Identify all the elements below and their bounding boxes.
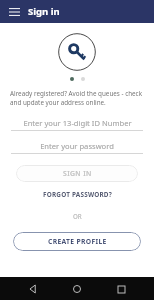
staticText: SIGN IN xyxy=(63,169,92,178)
staticText: FORGOT PASSWORD? xyxy=(43,190,112,199)
button[interactable]: SIGN IN xyxy=(16,165,138,182)
staticText: Enter your password xyxy=(40,141,114,151)
button[interactable]: Back xyxy=(22,278,44,300)
staticText: OR xyxy=(73,212,82,220)
staticText: Sign in xyxy=(28,5,60,18)
button[interactable]: Enter your 13-digit ID Number xyxy=(11,116,143,131)
button[interactable]: FORGOT PASSWORD? xyxy=(39,189,116,200)
button[interactable]: Enter your password xyxy=(11,139,143,154)
button[interactable]: Open navigation menu xyxy=(6,4,22,20)
staticText: CREATE PROFILE xyxy=(48,237,107,246)
button[interactable]: CREATE PROFILE xyxy=(13,232,141,251)
button[interactable]: Home xyxy=(66,278,88,300)
staticText: Enter your 13-digit ID Number xyxy=(23,118,132,128)
staticText: Already registered? Avoid the queues - c… xyxy=(10,89,144,107)
button[interactable]: Recent apps xyxy=(110,278,132,300)
